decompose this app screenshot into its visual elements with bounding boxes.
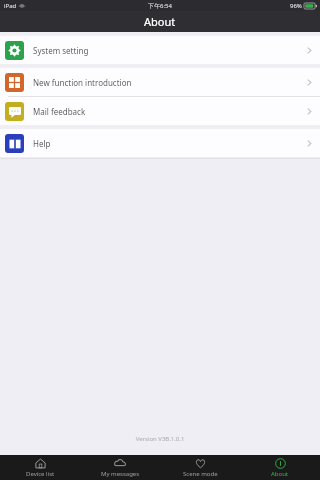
other: My messages (114, 457, 126, 469)
button[interactable]: Help (0, 129, 320, 157)
staticText: 96% (290, 2, 302, 10)
staticText: 下午6:54 (148, 2, 172, 10)
staticText: Version V3B.1.0.1 (0, 435, 320, 443)
staticText: Scene mode (183, 470, 218, 478)
button[interactable]: Device list (0, 455, 80, 480)
other: About (275, 458, 286, 469)
staticText: Mail feedback (33, 106, 307, 117)
staticText: Device list (26, 470, 55, 478)
staticText: My messages (101, 470, 140, 478)
button[interactable]: Mail feedback (0, 97, 320, 125)
button[interactable]: Scene mode (160, 455, 240, 480)
staticText: About (271, 470, 289, 478)
button[interactable]: System setting (0, 36, 320, 64)
button[interactable]: New function introduction (0, 68, 320, 96)
staticText: New function introduction (33, 77, 307, 88)
staticText: iPad (4, 2, 17, 10)
staticText: About (144, 14, 176, 29)
other: Device list (35, 458, 46, 469)
button[interactable]: About (240, 455, 320, 480)
button[interactable]: My messages (80, 455, 160, 480)
staticText: Help (33, 138, 307, 149)
staticText: System setting (33, 45, 307, 56)
other: Scene mode (195, 458, 206, 469)
